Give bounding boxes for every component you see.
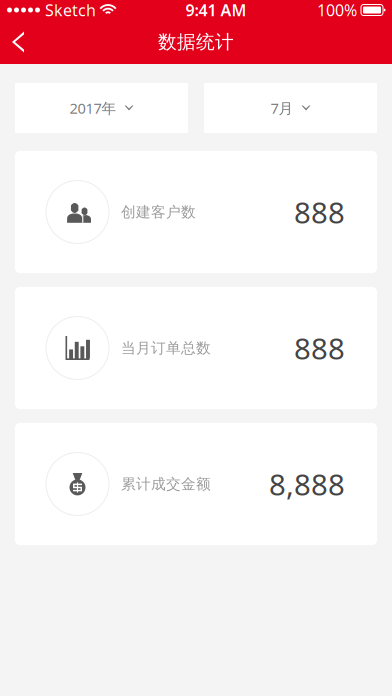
staticText: 累计成交金额: [121, 475, 211, 493]
staticText: 2017年: [69, 98, 116, 118]
button[interactable]: 累计成交金额: [15, 423, 377, 545]
button[interactable]: 7月: [204, 83, 377, 133]
staticText: Sketch: [45, 0, 96, 21]
button[interactable]: Back: [0, 20, 44, 64]
staticText: 7月: [270, 98, 293, 118]
button[interactable]: 当月订单总数: [15, 287, 377, 409]
staticText: 创建客户数: [121, 203, 196, 221]
staticText: 8,888: [269, 464, 345, 503]
button[interactable]: 2017年: [15, 83, 188, 133]
staticText: 888: [294, 328, 345, 367]
staticText: 888: [294, 192, 345, 231]
button[interactable]: 创建客户数: [15, 151, 377, 273]
staticText: 9:41 AM: [185, 0, 246, 21]
staticText: 100%: [317, 0, 357, 21]
staticText: 当月订单总数: [121, 339, 211, 357]
staticText: 数据统计: [158, 30, 234, 53]
